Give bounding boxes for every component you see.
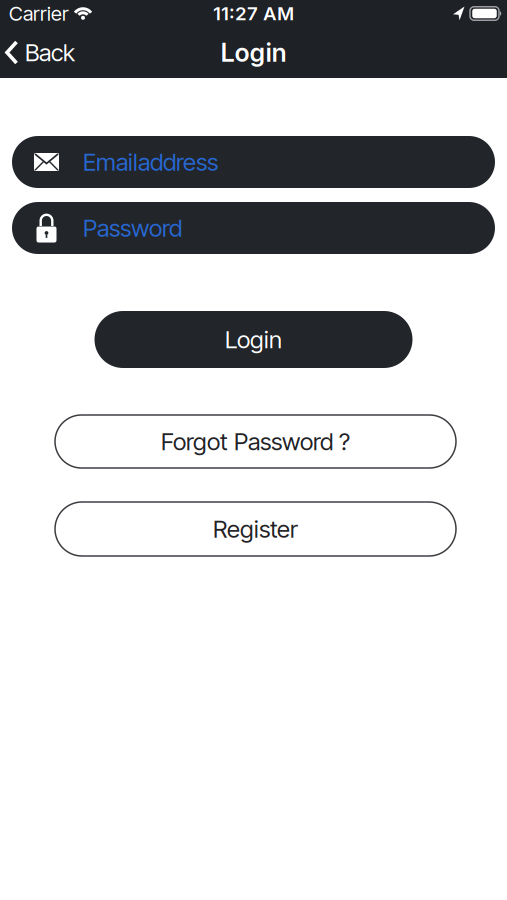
button[interactable]: Login <box>94 311 412 368</box>
button[interactable]: Register <box>55 502 456 556</box>
staticText: Password <box>83 213 182 242</box>
button[interactable]: Forgot Password ? <box>55 415 456 468</box>
staticText: Forgot Password ? <box>161 427 350 456</box>
button[interactable]: Password <box>12 202 495 254</box>
button[interactable]: Back <box>0 27 79 78</box>
staticText: Emailaddress <box>83 147 218 176</box>
staticText: 11:27 AM <box>213 2 294 25</box>
staticText: Back <box>25 38 75 67</box>
staticText: Carrier <box>9 1 69 26</box>
staticText: Login <box>225 325 282 354</box>
staticText: Register <box>213 514 298 543</box>
staticText: Login <box>220 37 286 68</box>
button[interactable]: Emailaddress <box>12 136 495 188</box>
